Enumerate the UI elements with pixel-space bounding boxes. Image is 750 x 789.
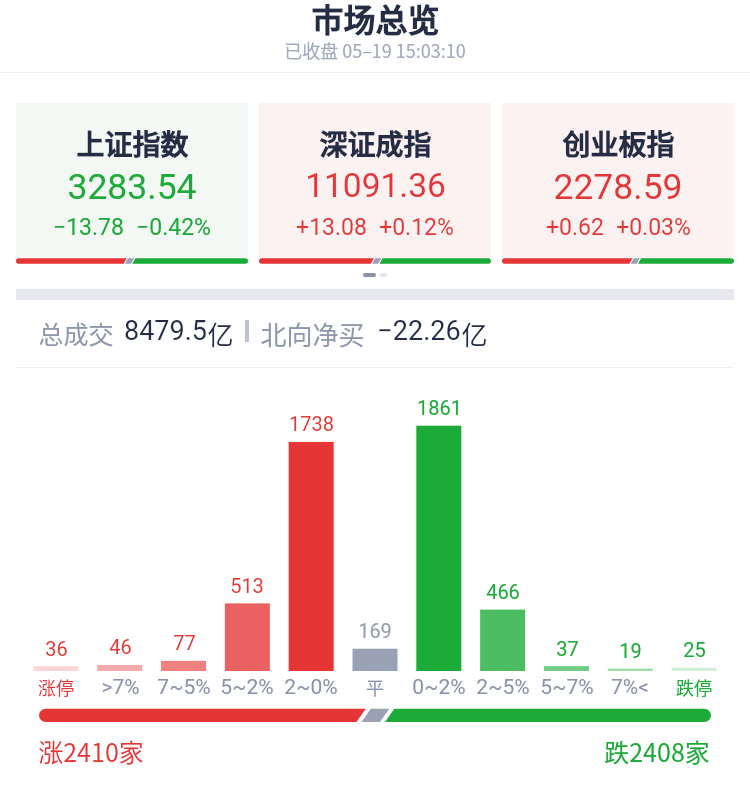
staticText: 2278.59 — [553, 166, 683, 208]
staticText: 0~2% — [412, 675, 466, 700]
staticText: 创业板指 — [562, 123, 675, 164]
button[interactable]: 5~2% — [215, 675, 279, 700]
staticText: 19 — [619, 639, 642, 662]
staticText: −13.78 — [53, 214, 124, 241]
staticText: 169 — [358, 619, 392, 642]
staticText: −0.42% — [136, 214, 211, 241]
staticText: 46 — [109, 635, 132, 658]
staticText: 37 — [556, 637, 579, 660]
staticText: 总成交 — [38, 315, 114, 351]
button[interactable]: 5~7% — [535, 675, 599, 700]
button[interactable]: 创业板指 — [502, 103, 734, 264]
staticText: 深证成指 — [319, 123, 432, 164]
button[interactable]: 上证指数 — [16, 103, 248, 264]
staticText: −22.26 — [377, 315, 461, 347]
button[interactable]: >7% — [88, 675, 152, 700]
staticText: 1738 — [289, 412, 334, 435]
staticText: +13.08 — [296, 214, 367, 241]
button[interactable]: 7~5% — [152, 675, 216, 700]
staticText: 市场总览 — [311, 0, 440, 41]
button[interactable]: 涨停 — [24, 674, 88, 700]
button[interactable]: 0~2% — [407, 675, 471, 700]
staticText: 亿 — [461, 315, 488, 353]
button[interactable]: 平 — [343, 674, 407, 700]
staticText: 466 — [486, 580, 520, 603]
button[interactable]: 总成交 — [38, 315, 488, 353]
staticText: 2~0% — [284, 675, 338, 700]
staticText: 5~2% — [220, 675, 274, 700]
button[interactable]: 7%< — [598, 675, 662, 700]
staticText: 5~7% — [540, 675, 594, 700]
staticText: 11091.36 — [305, 166, 446, 205]
button[interactable]: 2~0% — [279, 675, 343, 700]
staticText: 7%< — [611, 675, 649, 700]
staticText: 25 — [683, 638, 706, 661]
staticText: 涨停 — [38, 674, 74, 700]
staticText: 跌2408家 — [604, 733, 710, 769]
button[interactable]: 深证成指 — [259, 103, 491, 264]
staticText: +0.03% — [616, 214, 691, 241]
staticText: 2~5% — [476, 675, 530, 700]
staticText: 平 — [366, 674, 384, 700]
staticText: >7% — [101, 675, 140, 700]
staticText: 跌停 — [676, 674, 712, 700]
button[interactable]: 跌停 — [662, 674, 726, 700]
staticText: 1861 — [417, 396, 462, 419]
staticText: +0.62 — [546, 214, 604, 241]
staticText: 上证指数 — [76, 123, 189, 164]
staticText: 7~5% — [157, 675, 211, 700]
staticText: 36 — [45, 637, 68, 660]
staticText: +0.12% — [379, 214, 454, 241]
staticText: 涨2410家 — [38, 733, 144, 769]
staticText: 北向净买 — [260, 315, 365, 353]
staticText: 已收盘 05–19 15:03:10 — [284, 37, 466, 63]
staticText: 3283.54 — [67, 166, 197, 208]
staticText: 8479.5 — [124, 315, 207, 347]
staticText: 513 — [230, 574, 264, 597]
button[interactable]: 2~5% — [471, 675, 535, 700]
staticText: 77 — [173, 631, 196, 654]
staticText: 亿 — [207, 315, 234, 353]
button[interactable]: 市场总览 — [0, 0, 750, 72]
